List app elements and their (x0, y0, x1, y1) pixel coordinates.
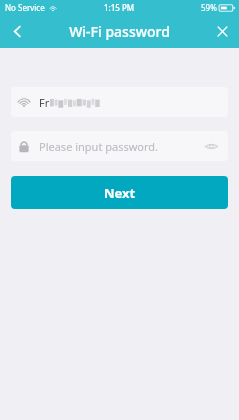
staticText: No Service (5, 2, 45, 13)
button[interactable]: Close (205, 15, 239, 48)
button[interactable]: Please input password. (11, 131, 228, 161)
staticText: Please input password. (39, 139, 202, 154)
staticText: 1:15 PM (104, 2, 135, 13)
button[interactable]: Show password (202, 137, 220, 155)
staticText: Wi-Fi password (69, 22, 170, 41)
staticText: Fr (39, 95, 50, 110)
button[interactable]: Fr (11, 87, 228, 117)
button[interactable]: Next (11, 176, 228, 209)
button[interactable]: Back (0, 15, 34, 48)
staticText: 59% (201, 2, 217, 13)
staticText: Next (104, 184, 136, 202)
